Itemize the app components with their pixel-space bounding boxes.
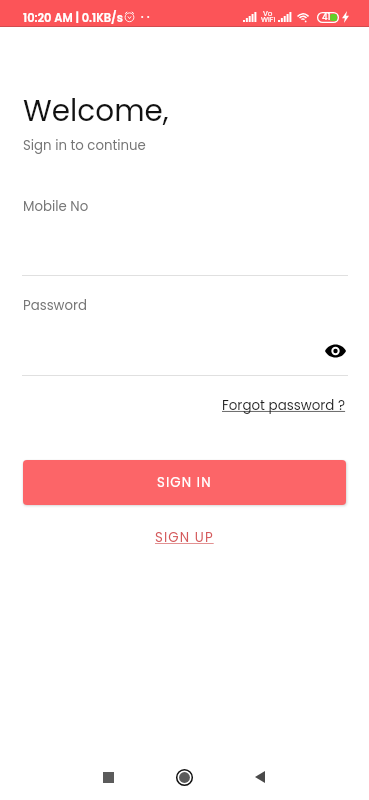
staticText: 10:20 AM | 0.1KB/s <box>23 10 123 26</box>
button[interactable]: SIGN UP <box>155 528 214 547</box>
button[interactable]: Show password <box>317 333 353 369</box>
staticText: Sign in to continue <box>23 136 146 155</box>
button[interactable]: SIGN IN <box>23 460 346 505</box>
staticText: Vo <box>263 8 273 18</box>
staticText: Password <box>23 296 87 315</box>
staticText: Welcome, <box>23 90 169 131</box>
staticText: SIGN IN <box>157 473 212 492</box>
button[interactable]: Forgot password ? <box>222 396 346 415</box>
staticText: SIGN UP <box>155 528 214 547</box>
staticText: WiFi <box>261 14 276 24</box>
staticText: Mobile No <box>23 197 89 216</box>
staticText: Forgot password ? <box>222 396 346 415</box>
button[interactable]: Back <box>240 757 280 797</box>
staticText: 41 <box>322 11 331 23</box>
button[interactable]: Home <box>164 757 204 797</box>
button[interactable]: Recents <box>88 757 128 797</box>
